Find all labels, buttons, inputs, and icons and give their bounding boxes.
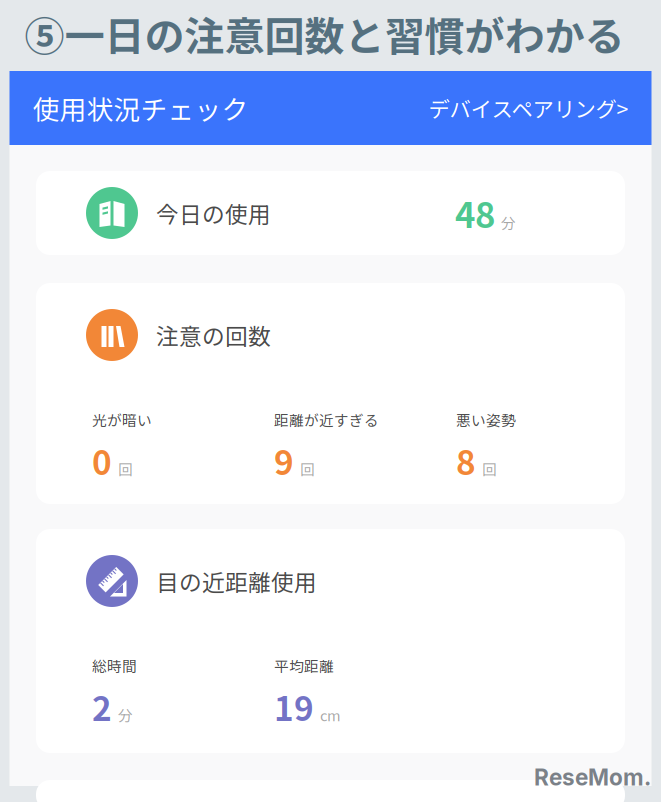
staticText: 48: [455, 188, 495, 238]
staticText: 19: [274, 682, 314, 730]
button[interactable]: 今日の使用: [36, 171, 625, 255]
button[interactable]: デバイスペアリング>: [428, 93, 628, 123]
staticText: 総時間: [92, 655, 137, 676]
staticText: 分: [501, 212, 516, 233]
staticText: 0: [92, 436, 112, 484]
staticText: 回: [300, 458, 315, 479]
staticText: 使用状況チェック: [32, 89, 248, 127]
staticText: 目の近距離使用: [156, 565, 317, 597]
staticText: 分: [118, 704, 133, 725]
staticText: 悪い姿勢: [456, 409, 516, 430]
staticText: 今日の使用: [156, 197, 271, 229]
staticText: 8: [456, 436, 476, 484]
staticText: 回: [482, 458, 497, 479]
staticText: 注意の回数: [156, 319, 271, 351]
staticText: ReseMom.: [534, 764, 651, 791]
staticText: 2: [92, 682, 112, 730]
staticText: 距離が近すぎる: [274, 409, 379, 430]
staticText: cm: [320, 704, 341, 725]
staticText: 9: [274, 436, 294, 484]
staticText: ⑤一日の注意回数と習慣がわかる: [24, 4, 624, 62]
staticText: デバイスペアリング>: [428, 93, 628, 123]
staticText: 回: [118, 458, 133, 479]
staticText: 平均距離: [274, 655, 334, 676]
staticText: 光が暗い: [92, 409, 152, 430]
